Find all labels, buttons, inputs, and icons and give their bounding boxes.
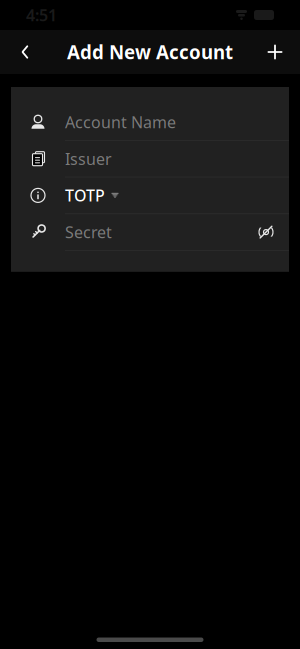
button[interactable]: Account Name (11, 104, 289, 141)
button[interactable]: Back (5, 30, 45, 74)
staticText: Add New Account (67, 40, 233, 64)
button[interactable]: Add (255, 30, 295, 74)
staticText: Secret (65, 221, 112, 243)
staticText: 4:51 (26, 4, 57, 26)
button[interactable]: Issuer (11, 141, 289, 177)
staticText: TOTP (65, 185, 105, 206)
button[interactable]: TOTP (11, 177, 289, 214)
staticText: Account Name (65, 111, 176, 133)
staticText: Issuer (65, 148, 112, 169)
button[interactable]: Secret (11, 214, 289, 251)
